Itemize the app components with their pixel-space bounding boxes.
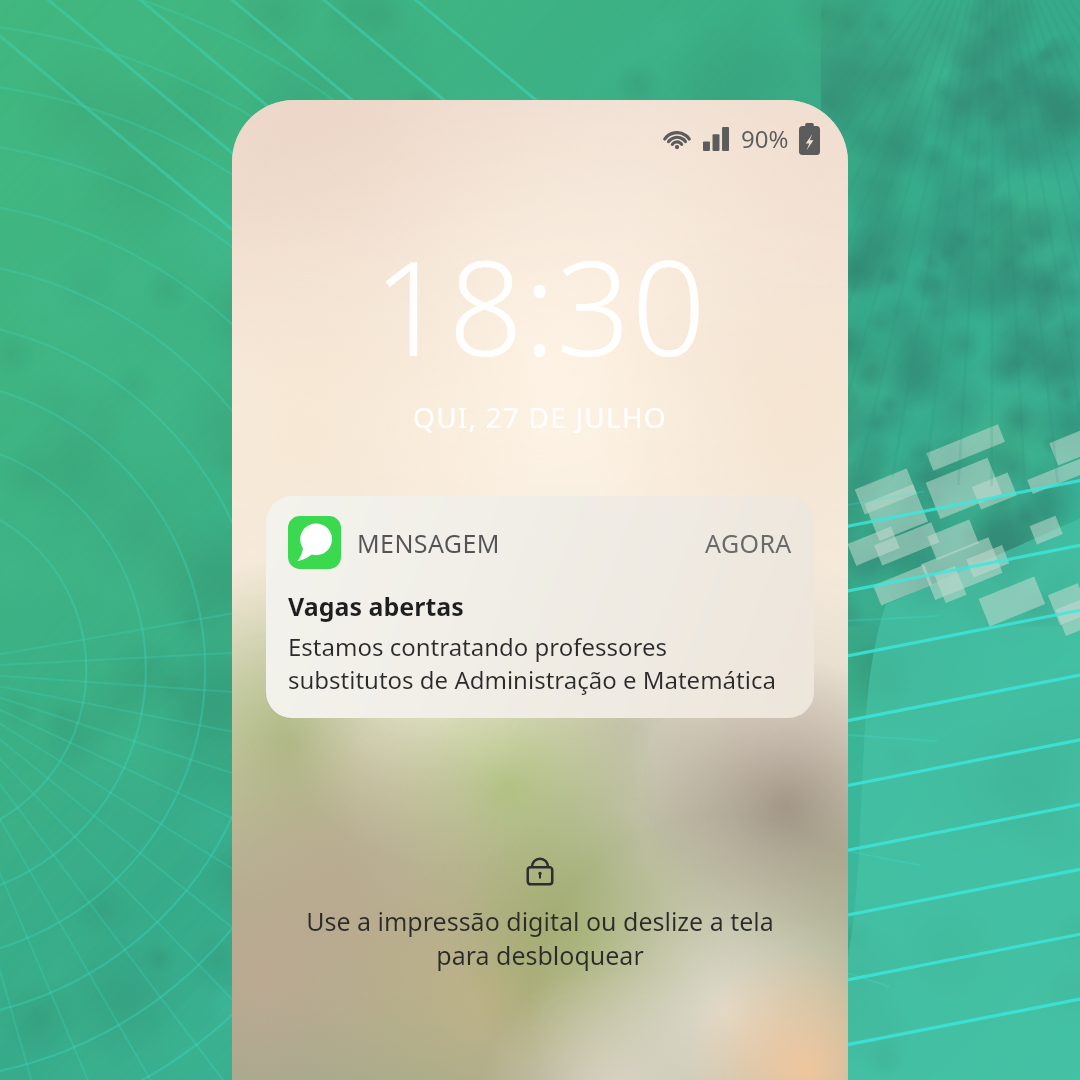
button[interactable]: MENSAGEM (266, 496, 814, 718)
staticText: Vagas abertas (288, 589, 464, 623)
other: Bloqueado (523, 852, 557, 886)
staticText: QUI, 27 DE JULHO (232, 398, 848, 436)
button[interactable]: Bloqueado (232, 852, 848, 1080)
staticText: AGORA (705, 526, 792, 560)
staticText: 18:30 (232, 217, 848, 394)
staticText: 90% (741, 122, 789, 155)
staticText: Estamos contratando professores substitu… (288, 630, 792, 696)
staticText: MENSAGEM (357, 526, 500, 560)
staticText: Use a impressão digital ou deslize a tel… (304, 904, 776, 972)
